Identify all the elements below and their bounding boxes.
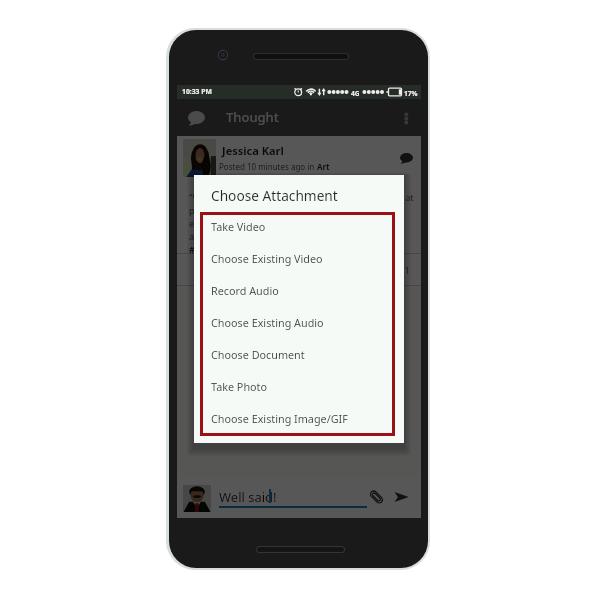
button[interactable]: Messages bbox=[188, 111, 205, 126]
button[interactable]: More options bbox=[398, 106, 415, 131]
staticText: Record Audio bbox=[211, 283, 279, 298]
staticText: #inspiration bbox=[189, 243, 245, 256]
button[interactable]: Choose Existing Image/GIF bbox=[200, 402, 395, 434]
staticText: Jessica Karl bbox=[222, 143, 284, 158]
staticText: Choose Document bbox=[211, 347, 305, 362]
staticText: Choose Existing Video bbox=[211, 251, 323, 266]
staticText: Posted 10 minutes ago in bbox=[219, 161, 317, 172]
staticText: Well said! bbox=[219, 488, 277, 506]
staticText: Take Video bbox=[211, 219, 266, 234]
button[interactable]: Record Audio bbox=[200, 274, 395, 306]
button[interactable]: Comments bbox=[400, 153, 413, 164]
staticText: 4G bbox=[351, 89, 360, 98]
staticText: Thought bbox=[226, 108, 279, 126]
staticText: Choose Attachment bbox=[211, 186, 338, 205]
staticText: 10:33 PM bbox=[182, 87, 212, 96]
button[interactable]: Take Photo bbox=[200, 370, 395, 402]
staticText: 17% bbox=[404, 89, 418, 98]
button[interactable]: Choose Existing Audio bbox=[200, 306, 395, 338]
staticText: “What inspires everyone here today when … bbox=[189, 191, 428, 217]
button[interactable]: Take Video bbox=[200, 210, 395, 242]
staticText: Choose Existing Audio bbox=[211, 315, 324, 330]
button[interactable]: Choose Existing Video bbox=[200, 242, 395, 274]
staticText: Art bbox=[317, 161, 330, 172]
staticText: everyone here and what keeps you all goi… bbox=[189, 217, 380, 230]
staticText: Choose Existing Image/GIF bbox=[211, 411, 348, 426]
staticText: about art?” I would love to hear thought… bbox=[189, 230, 369, 243]
staticText: Take Photo bbox=[211, 379, 268, 394]
button[interactable]: Choose Document bbox=[200, 338, 395, 370]
button[interactable]: Send bbox=[394, 491, 409, 503]
button[interactable]: Attach file bbox=[369, 490, 384, 504]
staticText: 1 bbox=[405, 265, 410, 276]
